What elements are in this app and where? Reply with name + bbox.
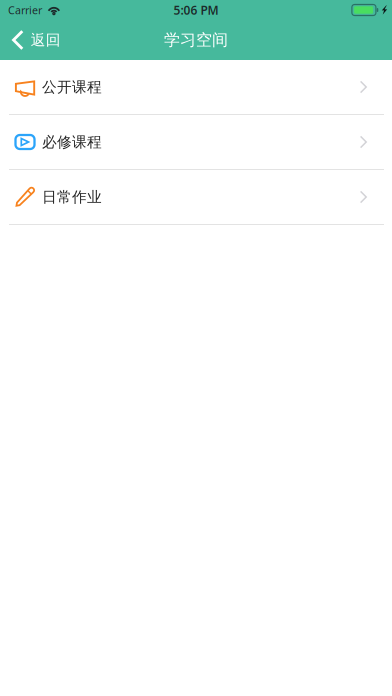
staticText: 返回: [31, 31, 61, 49]
button[interactable]: 公开课程: [0, 60, 392, 115]
button[interactable]: 日常作业: [0, 170, 392, 225]
staticText: 日常作业: [42, 188, 102, 206]
staticText: 学习空间: [164, 30, 228, 50]
staticText: 必修课程: [42, 133, 102, 151]
button[interactable]: 必修课程: [0, 115, 392, 170]
staticText: 公开课程: [42, 78, 102, 96]
button[interactable]: 返回: [0, 20, 71, 60]
staticText: Carrier: [8, 3, 42, 17]
staticText: 5:06 PM: [173, 2, 218, 18]
